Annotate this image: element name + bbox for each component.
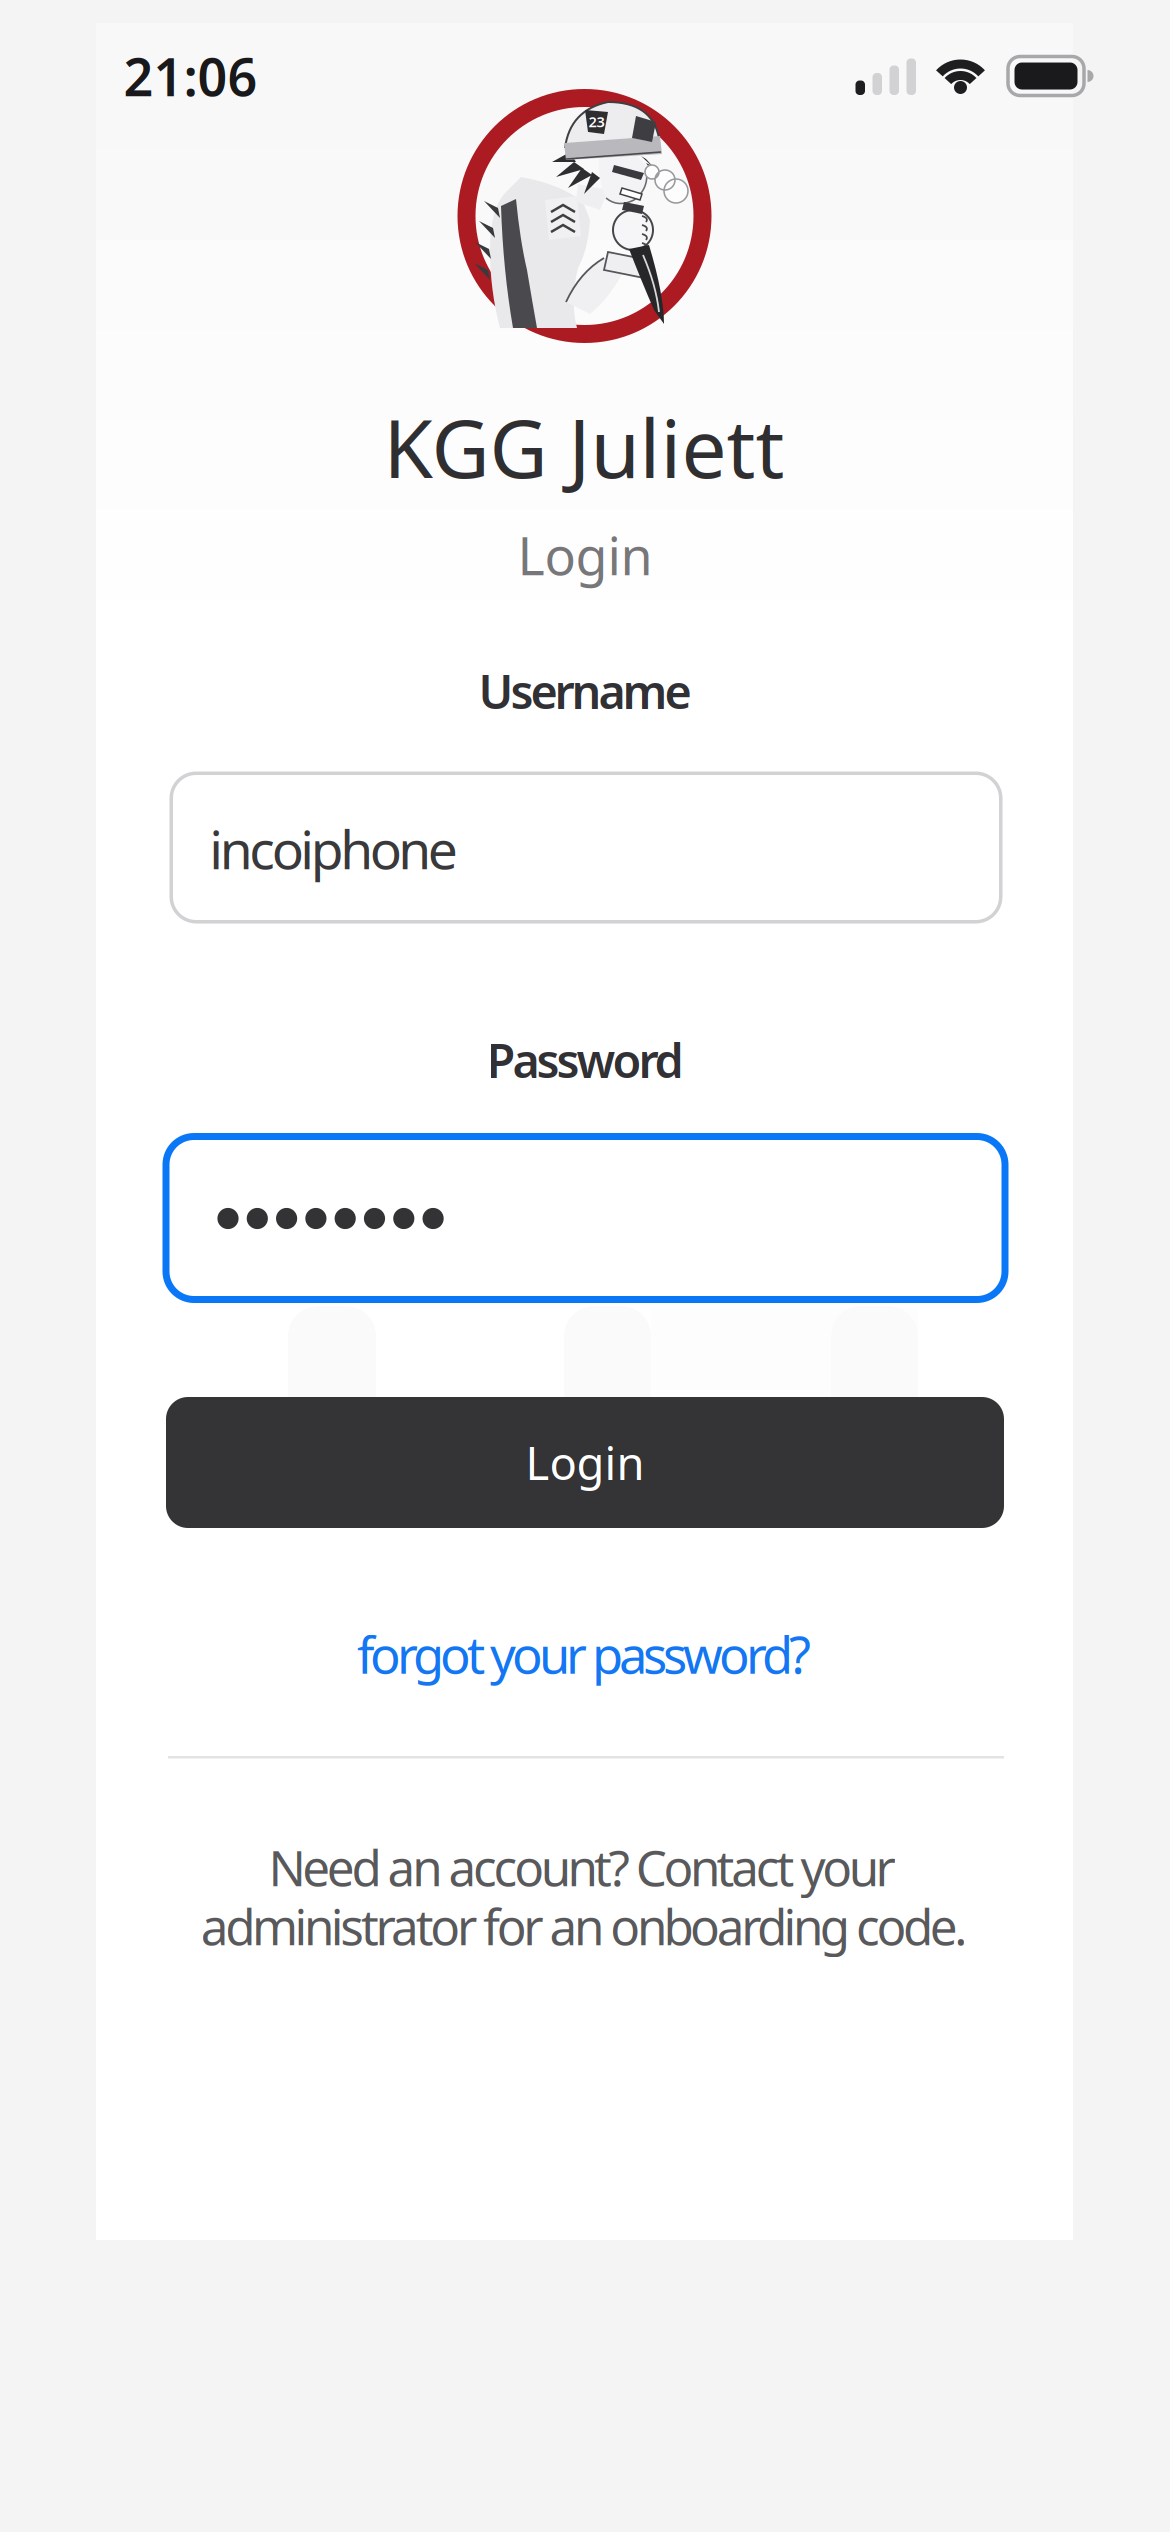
staticText: Login xyxy=(517,520,652,590)
button[interactable]: Username xyxy=(169,771,1002,923)
staticText: administrator for an onboarding code. xyxy=(201,1893,967,1959)
staticText: 23 xyxy=(588,112,604,131)
button[interactable]: forgot your password? xyxy=(234,1609,934,1699)
staticText: Login xyxy=(525,1432,644,1493)
button[interactable]: Login xyxy=(166,1397,1004,1528)
staticText: 21:06 xyxy=(123,41,257,111)
staticText: Username xyxy=(478,660,691,722)
staticText: incoiphone xyxy=(209,813,458,884)
button[interactable]: Password xyxy=(162,1133,1008,1303)
staticText: Password xyxy=(486,1029,683,1091)
staticText: Need an account? Contact your xyxy=(269,1834,895,1900)
staticText: KGG Juliett xyxy=(383,394,784,500)
staticText: forgot your password? xyxy=(357,1620,811,1688)
